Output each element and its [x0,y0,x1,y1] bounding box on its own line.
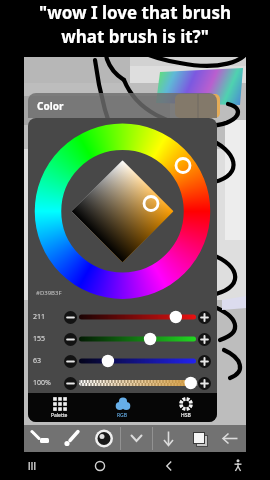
staticText: RGB [117,412,128,419]
button[interactable]: Increase [198,377,211,390]
button[interactable]: Layer preview [88,425,120,452]
button[interactable]: Increase [198,333,211,346]
button[interactable]: Back [215,425,246,452]
button[interactable]: Increase [198,311,211,324]
staticText: #D39B3F [36,289,62,297]
button[interactable]: Accessibility [226,454,250,478]
staticText: "wow I love that brush [39,1,231,24]
button[interactable]: Collapse [121,425,152,452]
button[interactable]: Brush [56,425,88,452]
button[interactable]: HSB [154,393,217,422]
button[interactable]: Recents [20,454,44,478]
staticText: what brush is it?" [61,25,209,48]
staticText: 100% [33,378,51,388]
button[interactable]: Decrease [64,333,77,346]
button[interactable]: Download [153,425,184,452]
button[interactable]: Color [28,93,217,118]
staticText: Color [37,99,64,113]
button[interactable]: Home [88,454,112,478]
staticText: HSB [181,412,191,419]
button[interactable]: Layers [184,425,215,452]
button[interactable]: Decrease [64,355,77,368]
staticText: 155 [33,334,46,344]
button[interactable]: Back [157,454,181,478]
button[interactable]: Undo and erase [24,425,56,452]
button[interactable]: Increase [198,355,211,368]
button[interactable]: RGB [91,393,154,422]
staticText: 211 [33,312,46,322]
button[interactable]: Decrease [64,311,77,324]
staticText: Palette [51,412,68,419]
button[interactable]: Palette [28,393,91,422]
button[interactable]: Decrease [64,377,77,390]
staticText: 63 [33,356,42,366]
